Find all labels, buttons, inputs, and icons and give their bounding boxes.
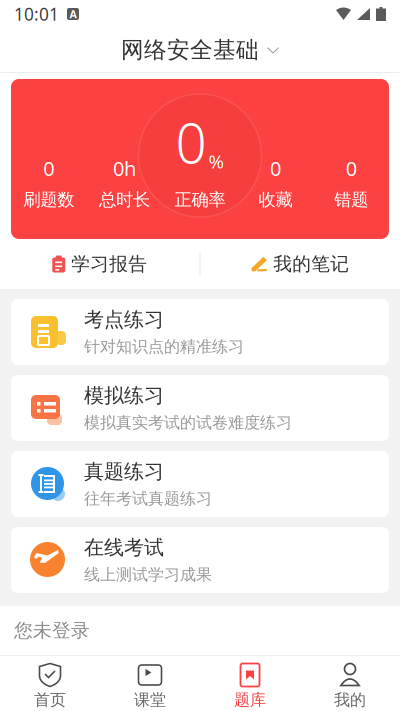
button[interactable]: 课堂 — [100, 656, 200, 711]
staticText: 针对知识点的精准练习 — [84, 337, 244, 357]
staticText: 学习报告 — [71, 252, 147, 275]
staticText: 0 — [346, 155, 357, 182]
staticText: 模拟真实考试的试卷难度练习 — [84, 413, 292, 433]
staticText: 网络安全基础 — [121, 36, 259, 64]
staticText: 真题练习 — [84, 459, 164, 484]
staticText: 往年考试真题练习 — [84, 489, 212, 509]
staticText: 0h — [113, 155, 136, 182]
staticText: A — [69, 7, 76, 21]
staticText: 在线考试 — [84, 535, 164, 560]
staticText: 0 — [175, 106, 206, 179]
staticText: 首页 — [34, 690, 66, 710]
staticText: 10:01 — [14, 2, 59, 25]
button[interactable]: 在线考试 — [11, 527, 389, 593]
staticText: 0 — [43, 155, 54, 182]
staticText: 刷题数 — [23, 189, 74, 210]
button[interactable]: 我的 — [300, 656, 400, 711]
staticText: 课堂 — [134, 690, 166, 710]
staticText: 我的笔记 — [273, 252, 349, 275]
staticText: 模拟练习 — [84, 383, 164, 408]
staticText: 线上测试学习成果 — [84, 565, 212, 585]
staticText: 总时长 — [99, 189, 150, 210]
button[interactable]: 题库 — [200, 656, 300, 711]
staticText: % — [208, 149, 224, 174]
button[interactable]: 我的笔记 — [200, 239, 400, 289]
button[interactable]: 考点练习 — [11, 299, 389, 365]
button[interactable]: 真题练习 — [11, 451, 389, 517]
staticText: 0 — [270, 155, 281, 182]
staticText: 我的 — [334, 690, 366, 710]
staticText: 正确率 — [174, 189, 225, 210]
button[interactable]: 学习报告 — [0, 239, 199, 289]
staticText: 错题 — [334, 189, 368, 210]
button[interactable]: 网络安全基础 — [121, 28, 279, 72]
button[interactable]: 模拟练习 — [11, 375, 389, 441]
staticText: 收藏 — [259, 189, 293, 210]
staticText: 考点练习 — [84, 307, 164, 332]
staticText: 您未登录 — [14, 619, 90, 642]
staticText: 题库 — [234, 690, 266, 710]
button[interactable]: 首页 — [0, 656, 100, 711]
